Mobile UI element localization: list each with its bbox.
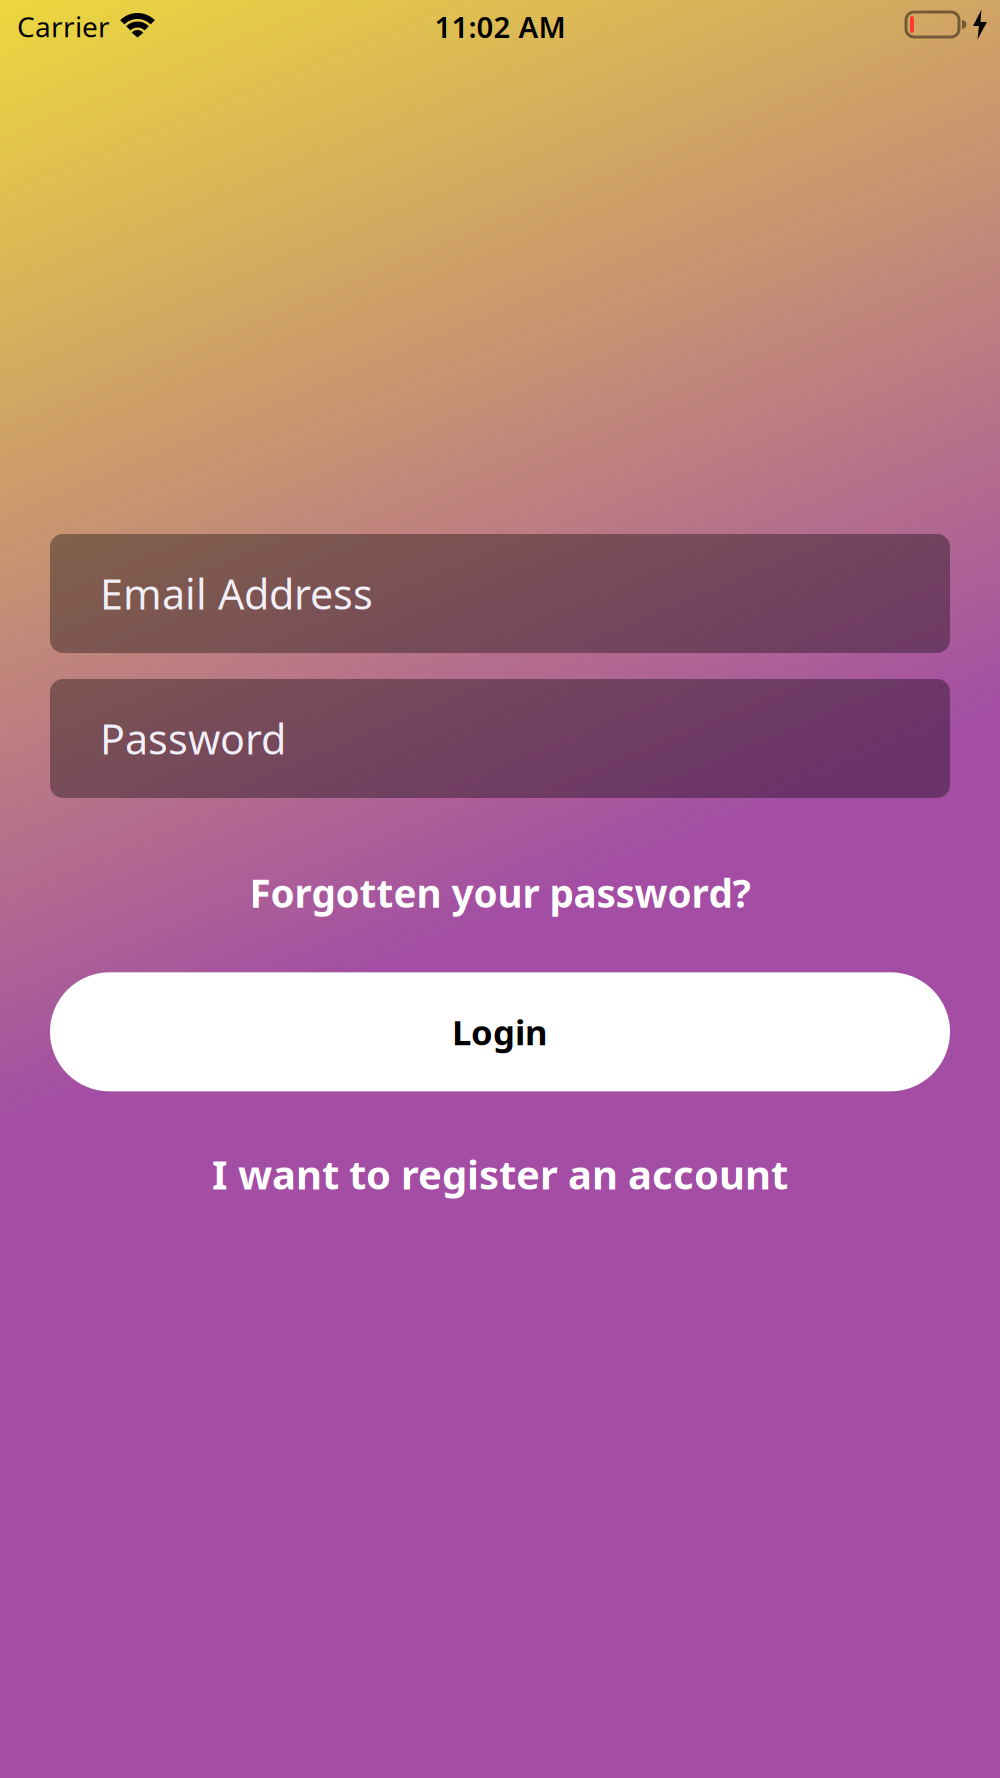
button[interactable]: Forgotten your password?	[249, 867, 750, 918]
staticText: I want to register an account	[212, 1147, 788, 1200]
staticText: Email Address	[100, 566, 373, 621]
button[interactable]: Password	[50, 679, 950, 798]
staticText: 11:02 AM	[434, 7, 565, 46]
staticText: Login	[452, 1009, 548, 1055]
button[interactable]: Email Address	[50, 534, 950, 653]
button[interactable]: I want to register an account	[212, 1147, 788, 1200]
staticText: Forgotten your password?	[249, 867, 750, 918]
staticText: Password	[100, 711, 286, 766]
button[interactable]: Login	[50, 972, 950, 1091]
staticText: Carrier	[17, 8, 110, 45]
